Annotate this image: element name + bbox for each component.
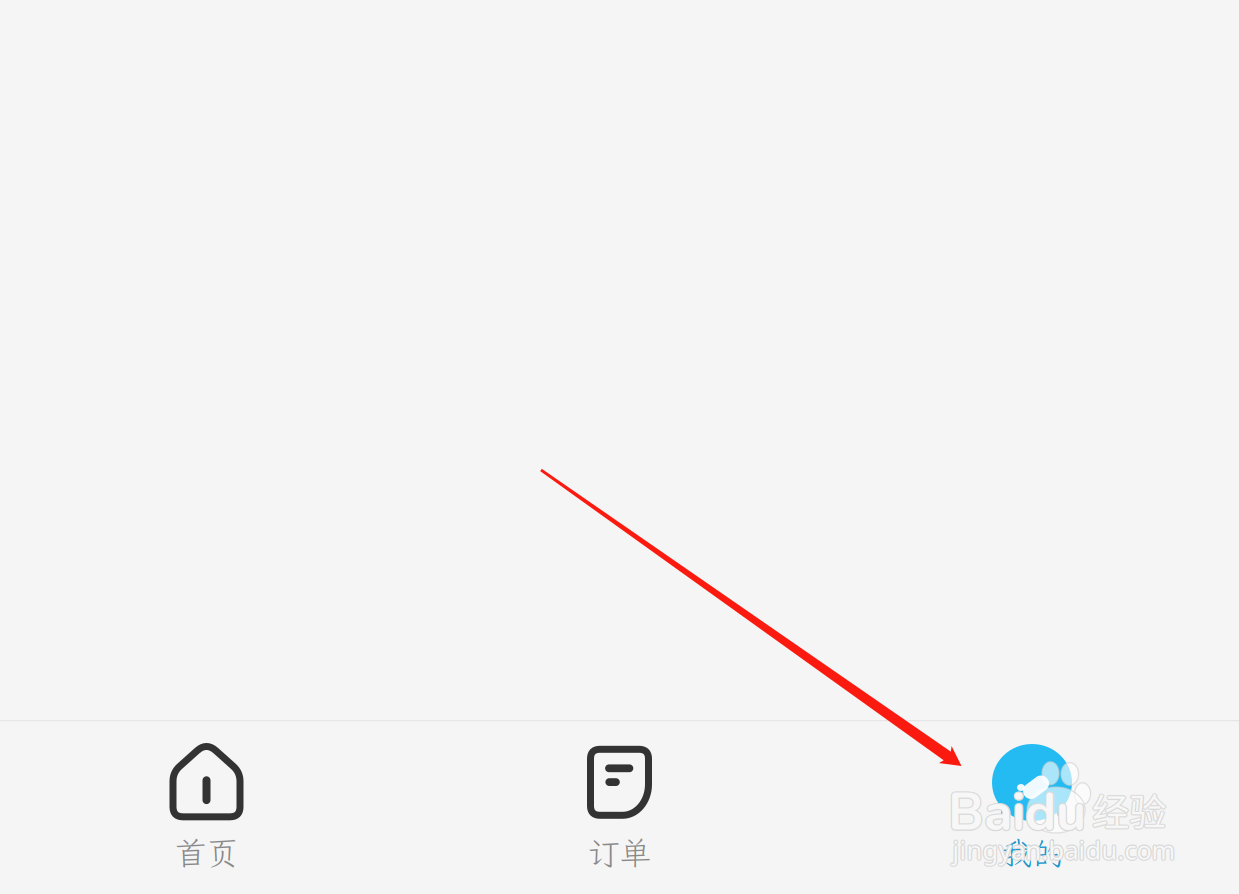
staticText: 订单: [587, 831, 651, 874]
staticText: jingyan.baidu.com: [952, 833, 1175, 867]
button[interactable]: 首页: [0, 721, 413, 894]
staticText: 我的: [1000, 831, 1064, 874]
staticText: 经验: [1092, 783, 1166, 837]
button[interactable]: 订单: [413, 721, 826, 894]
staticText: Baidu: [948, 777, 1086, 848]
button[interactable]: 我的: [826, 721, 1239, 894]
staticText: 首页: [174, 831, 238, 874]
